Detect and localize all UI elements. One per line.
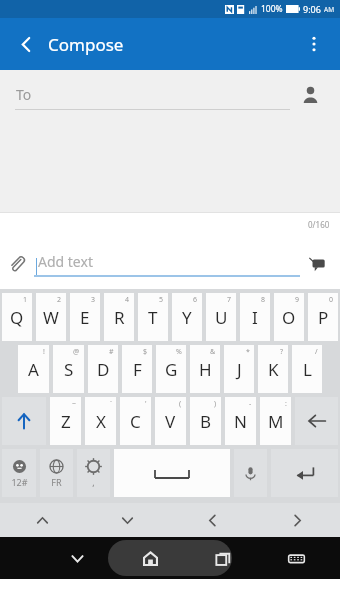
staticText: I [252, 306, 258, 329]
button[interactable]: Keyboard switcher [278, 540, 314, 576]
staticText: W [43, 306, 59, 329]
staticText: To [16, 85, 32, 104]
button[interactable]: Recent apps [205, 540, 241, 576]
button[interactable]: F [122, 345, 152, 393]
button[interactable]: Attach [0, 247, 34, 281]
button[interactable]: J [224, 345, 254, 393]
button[interactable]: Pick contact [292, 76, 328, 112]
button[interactable]: S [53, 345, 84, 393]
staticText: * [246, 347, 250, 357]
staticText: F [133, 358, 142, 381]
staticText: % [176, 347, 182, 357]
button[interactable]: N [225, 397, 256, 445]
staticText: Y [182, 306, 192, 329]
staticText: 2 [57, 295, 62, 305]
staticText: Q [10, 306, 24, 329]
button[interactable]: M [260, 397, 291, 445]
button[interactable]: Voice input [234, 449, 267, 497]
staticText: O [282, 306, 296, 329]
button[interactable]: Right [255, 503, 340, 537]
staticText: G [165, 358, 178, 381]
staticText: J [237, 358, 242, 381]
button[interactable]: T [138, 293, 168, 341]
button[interactable]: B [190, 397, 221, 445]
staticText: 5 [159, 295, 164, 305]
button[interactable]: R [104, 293, 134, 341]
staticText: 7 [227, 295, 232, 305]
staticText: & [210, 347, 216, 357]
staticText: 0 [329, 295, 334, 305]
staticText: B [200, 410, 212, 433]
button[interactable]: V [155, 397, 186, 445]
button[interactable]: W [36, 293, 66, 341]
button[interactable]: Enter [271, 449, 338, 497]
staticText: 12# [11, 476, 28, 488]
staticText: 6 [193, 295, 198, 305]
button[interactable]: D [88, 345, 118, 393]
button[interactable]: Q [2, 293, 32, 341]
button[interactable]: To [0, 70, 340, 118]
button[interactable]: Symbols [2, 449, 36, 497]
button[interactable]: C [120, 397, 151, 445]
staticText: 1 [23, 295, 28, 305]
button[interactable]: Z [50, 397, 81, 445]
staticText: AM [324, 5, 335, 14]
button[interactable]: Left [170, 503, 255, 537]
staticText: ` [110, 399, 112, 409]
button[interactable]: I [240, 293, 270, 341]
button[interactable]: P [308, 293, 338, 341]
button[interactable]: Back [6, 24, 46, 64]
button[interactable]: Up [0, 503, 85, 537]
button[interactable]: Home [132, 540, 168, 576]
staticText: R [114, 306, 125, 329]
staticText: Add text [38, 252, 93, 271]
button[interactable]: Y [172, 293, 202, 341]
staticText: $ [143, 347, 148, 357]
button[interactable]: Down [85, 503, 170, 537]
staticText: , [92, 476, 95, 488]
button[interactable]: Backspace [295, 397, 338, 445]
staticText: 4 [125, 295, 130, 305]
staticText: K [268, 358, 279, 381]
button[interactable]: H [190, 345, 220, 393]
button[interactable]: Add text [34, 252, 300, 277]
button[interactable]: U [206, 293, 236, 341]
button[interactable]: Settings [77, 449, 110, 497]
button[interactable]: X [85, 397, 116, 445]
staticText: D [97, 358, 110, 381]
staticText: C [130, 410, 141, 433]
staticText: 9:06 [303, 3, 321, 15]
staticText: ' [145, 399, 147, 409]
staticText: A [28, 358, 39, 381]
staticText: V [165, 410, 176, 433]
staticText: ( [179, 399, 182, 409]
staticText: # [109, 347, 114, 357]
button[interactable]: Shift [2, 397, 46, 445]
staticText: ) [214, 399, 217, 409]
staticText: T [148, 306, 158, 329]
staticText: 8 [261, 295, 266, 305]
button[interactable]: Hide keyboard [59, 540, 95, 576]
button[interactable]: Language [40, 449, 73, 497]
staticText: 0/160 [308, 219, 330, 230]
button[interactable]: A [18, 345, 49, 393]
staticText: ~ [72, 399, 77, 409]
button[interactable]: Send [300, 247, 334, 281]
staticText: - [249, 399, 252, 409]
staticText: 100% [261, 3, 283, 15]
button[interactable]: E [70, 293, 100, 341]
staticText: M [268, 410, 284, 433]
staticText: N [234, 410, 247, 433]
staticText: FR [51, 476, 62, 488]
button[interactable]: More options [294, 24, 334, 64]
staticText: : [285, 399, 287, 409]
staticText: ? [280, 347, 284, 357]
button[interactable]: O [274, 293, 304, 341]
button[interactable]: L [292, 345, 322, 393]
button[interactable]: G [156, 345, 186, 393]
staticText: E [80, 306, 90, 329]
button[interactable]: Space [114, 449, 230, 497]
button[interactable]: K [258, 345, 288, 393]
staticText: U [215, 306, 228, 329]
staticText: P [318, 306, 329, 329]
